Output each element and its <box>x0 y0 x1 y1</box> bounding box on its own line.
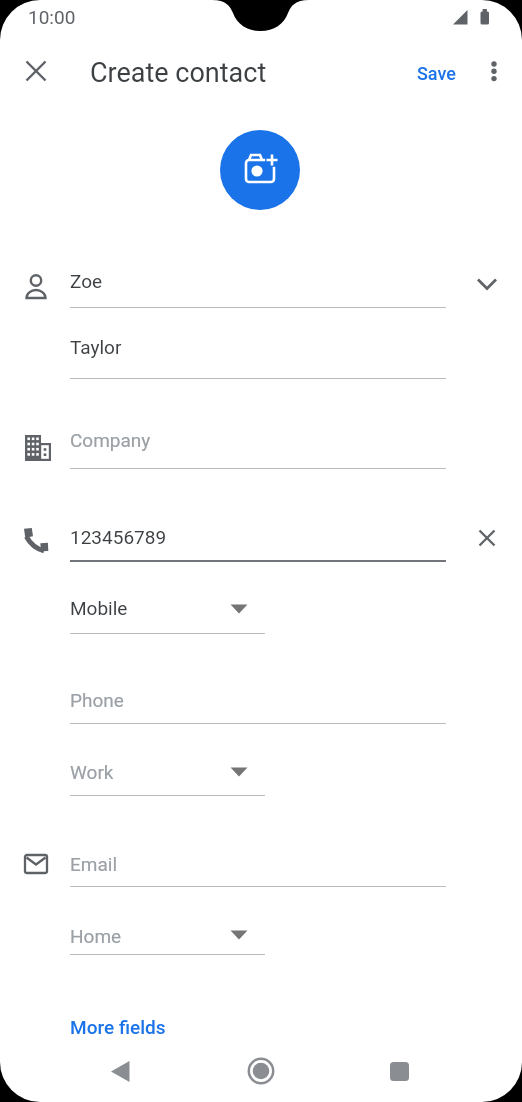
staticText: Email <box>70 853 118 875</box>
staticText: Taylor <box>70 336 122 358</box>
button[interactable]: Company <box>64 420 452 471</box>
button[interactable] <box>237 1047 285 1095</box>
staticText: Phone <box>70 689 124 711</box>
button[interactable]: Home <box>64 916 271 957</box>
button[interactable]: Taylor <box>64 327 452 381</box>
button[interactable]: Work <box>64 752 271 798</box>
button[interactable] <box>463 514 511 562</box>
staticText: Company <box>70 429 151 451</box>
staticText: Create contact <box>90 57 267 89</box>
button[interactable]: Zoe <box>64 261 452 310</box>
button[interactable]: Email <box>64 844 452 889</box>
button[interactable]: Phone <box>64 680 452 726</box>
button[interactable] <box>480 47 510 95</box>
button[interactable] <box>375 1047 423 1095</box>
staticText: Work <box>70 761 114 783</box>
button[interactable]: Mobile <box>64 588 271 636</box>
button[interactable]: More fields <box>56 1002 192 1046</box>
staticText: Save <box>417 63 456 84</box>
staticText: Home <box>70 925 122 947</box>
button[interactable] <box>12 47 60 95</box>
button[interactable] <box>463 260 511 308</box>
staticText: 10:00 <box>28 6 76 28</box>
staticText: Zoe <box>70 270 103 292</box>
staticText: 123456789 <box>70 526 167 548</box>
button[interactable]: Save <box>402 50 472 92</box>
staticText: More fields <box>70 1016 166 1038</box>
staticText: Mobile <box>70 597 128 619</box>
button[interactable] <box>96 1047 144 1095</box>
button[interactable]: 123456789 <box>64 517 452 563</box>
button[interactable] <box>220 130 300 210</box>
